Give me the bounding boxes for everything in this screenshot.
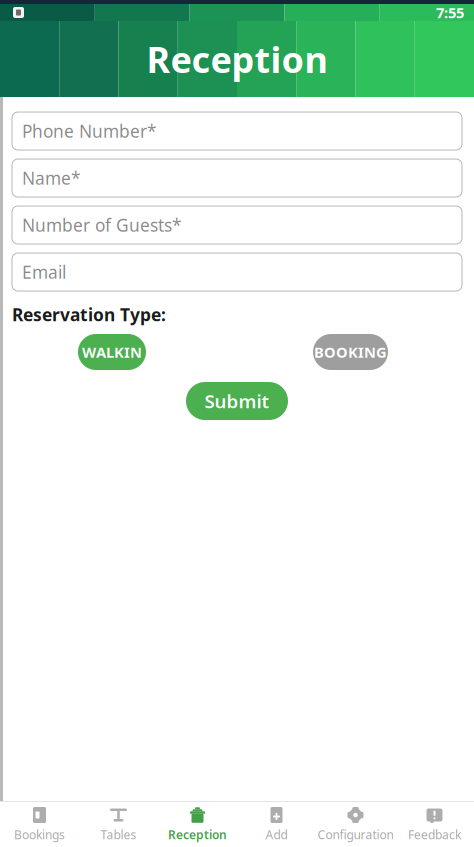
staticText: Reservation Type: [12,303,166,326]
button[interactable]: Add [237,802,316,847]
button[interactable]: BOOKING [313,334,388,370]
staticText: Name* [22,166,81,189]
button[interactable]: Tables [79,802,158,847]
staticText: Phone Number* [22,119,157,142]
staticText: Reception [146,35,327,83]
staticText: Configuration [317,826,393,842]
staticText: BOOKING [314,342,387,362]
button[interactable]: WALKIN [78,334,146,370]
staticText: Add [265,826,287,842]
staticText: Email [22,260,66,283]
staticText: WALKIN [82,342,142,362]
staticText: Number of Guests* [22,213,182,236]
staticText: 7:55 [436,3,464,22]
staticText: Reception [168,826,227,842]
button[interactable]: Configuration [316,802,395,847]
button[interactable]: Submit [186,382,288,420]
button[interactable]: Bookings [0,802,79,847]
staticText: Feedback [408,826,461,842]
button[interactable]: Reception [158,802,237,847]
staticText: Submit [204,389,269,413]
staticText: Bookings [14,826,65,842]
button[interactable]: Feedback [395,802,474,847]
staticText: Tables [100,826,136,842]
